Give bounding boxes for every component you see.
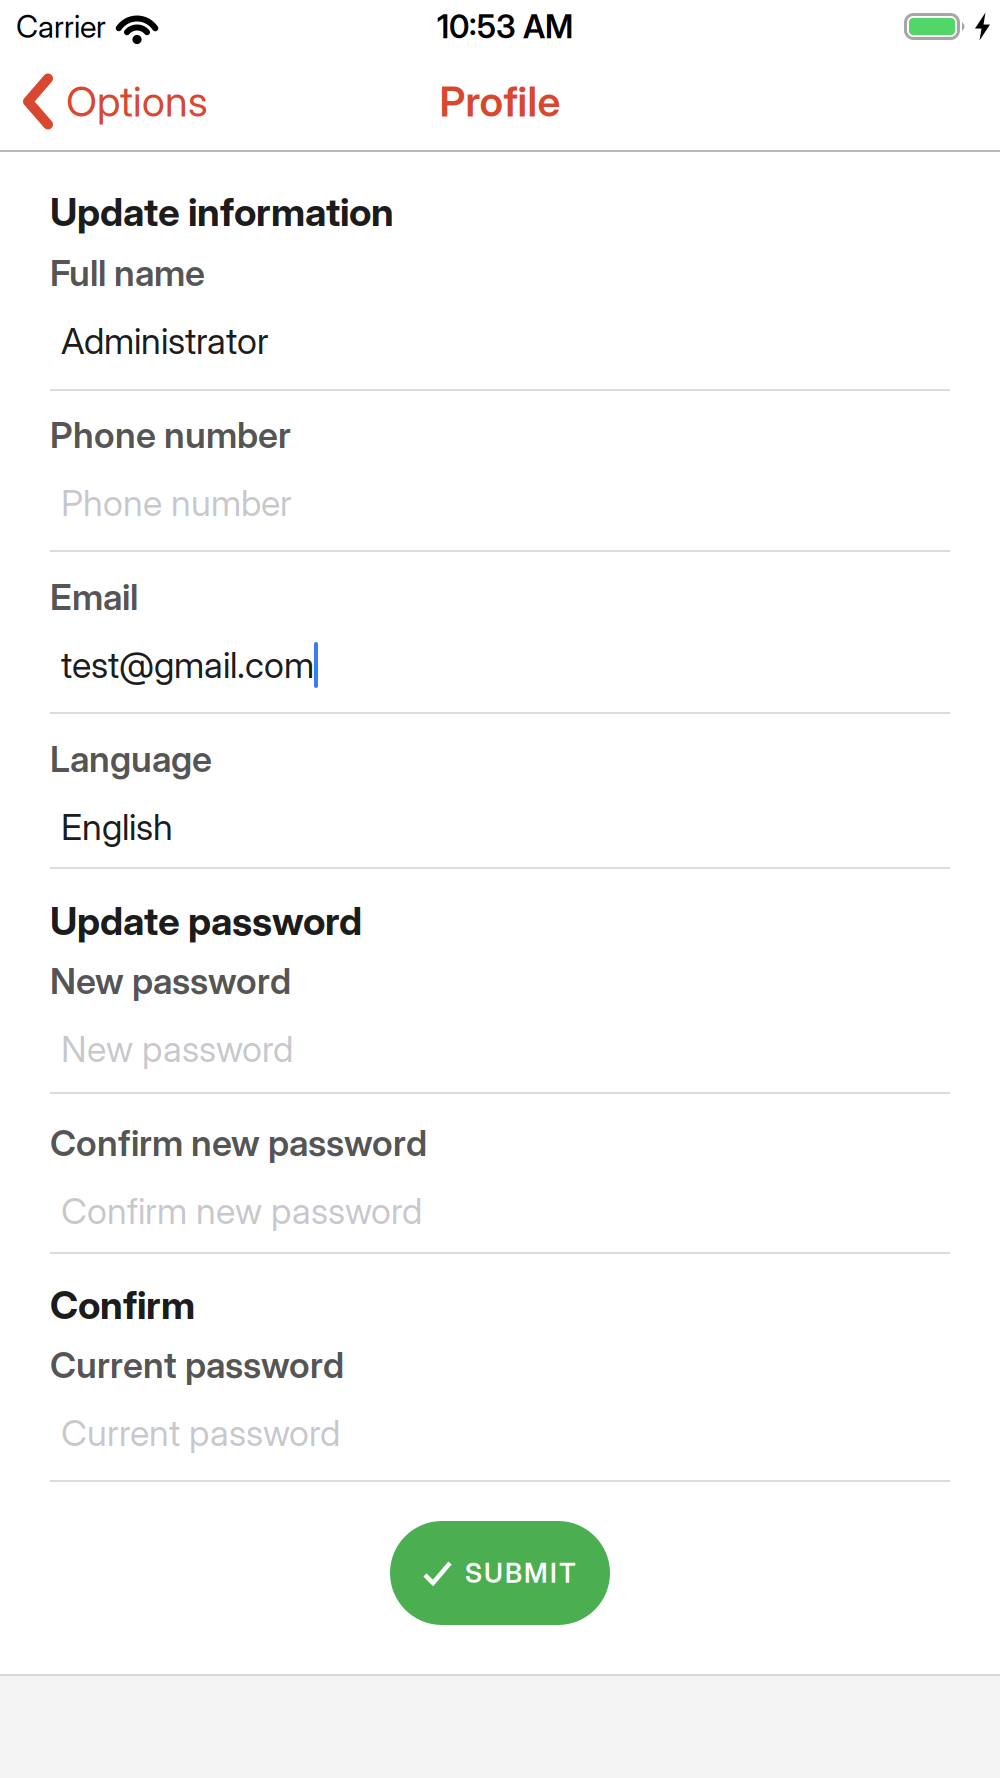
staticText: S U B M I T — [465, 1557, 576, 1589]
button[interactable]: Options — [0, 76, 208, 126]
staticText: Current password — [50, 1344, 344, 1386]
staticText: Confirm — [50, 1282, 195, 1328]
button[interactable]: English — [50, 797, 950, 857]
staticText: Phone number — [61, 482, 292, 524]
button[interactable]: New password — [50, 1019, 950, 1079]
staticText: Update password — [50, 898, 362, 944]
staticText: Full name — [50, 252, 205, 294]
button[interactable]: Current password — [50, 1403, 950, 1463]
button[interactable]: Phone number — [50, 473, 950, 533]
button[interactable]: S U B M I T — [390, 1521, 610, 1625]
staticText: Confirm new password — [61, 1190, 422, 1232]
staticText: Profile — [439, 77, 560, 126]
staticText: Administrator — [61, 320, 269, 362]
staticText: New password — [50, 960, 291, 1002]
staticText: test@gmail.com — [61, 644, 314, 686]
staticText: Carrier — [16, 8, 106, 45]
staticText: 10:53 AM — [437, 8, 573, 45]
staticText: Email — [50, 576, 138, 618]
staticText: Confirm new password — [50, 1122, 427, 1164]
staticText: English — [61, 806, 173, 848]
button[interactable]: Administrator — [50, 311, 950, 371]
staticText: New password — [61, 1028, 293, 1070]
staticText: Update information — [50, 189, 394, 235]
staticText: Options — [66, 77, 208, 126]
staticText: Current password — [61, 1412, 340, 1454]
staticText: Phone number — [50, 414, 291, 456]
staticText: Language — [50, 738, 212, 780]
button[interactable]: Confirm new password — [50, 1181, 950, 1241]
button[interactable]: test@gmail.com — [50, 635, 950, 695]
